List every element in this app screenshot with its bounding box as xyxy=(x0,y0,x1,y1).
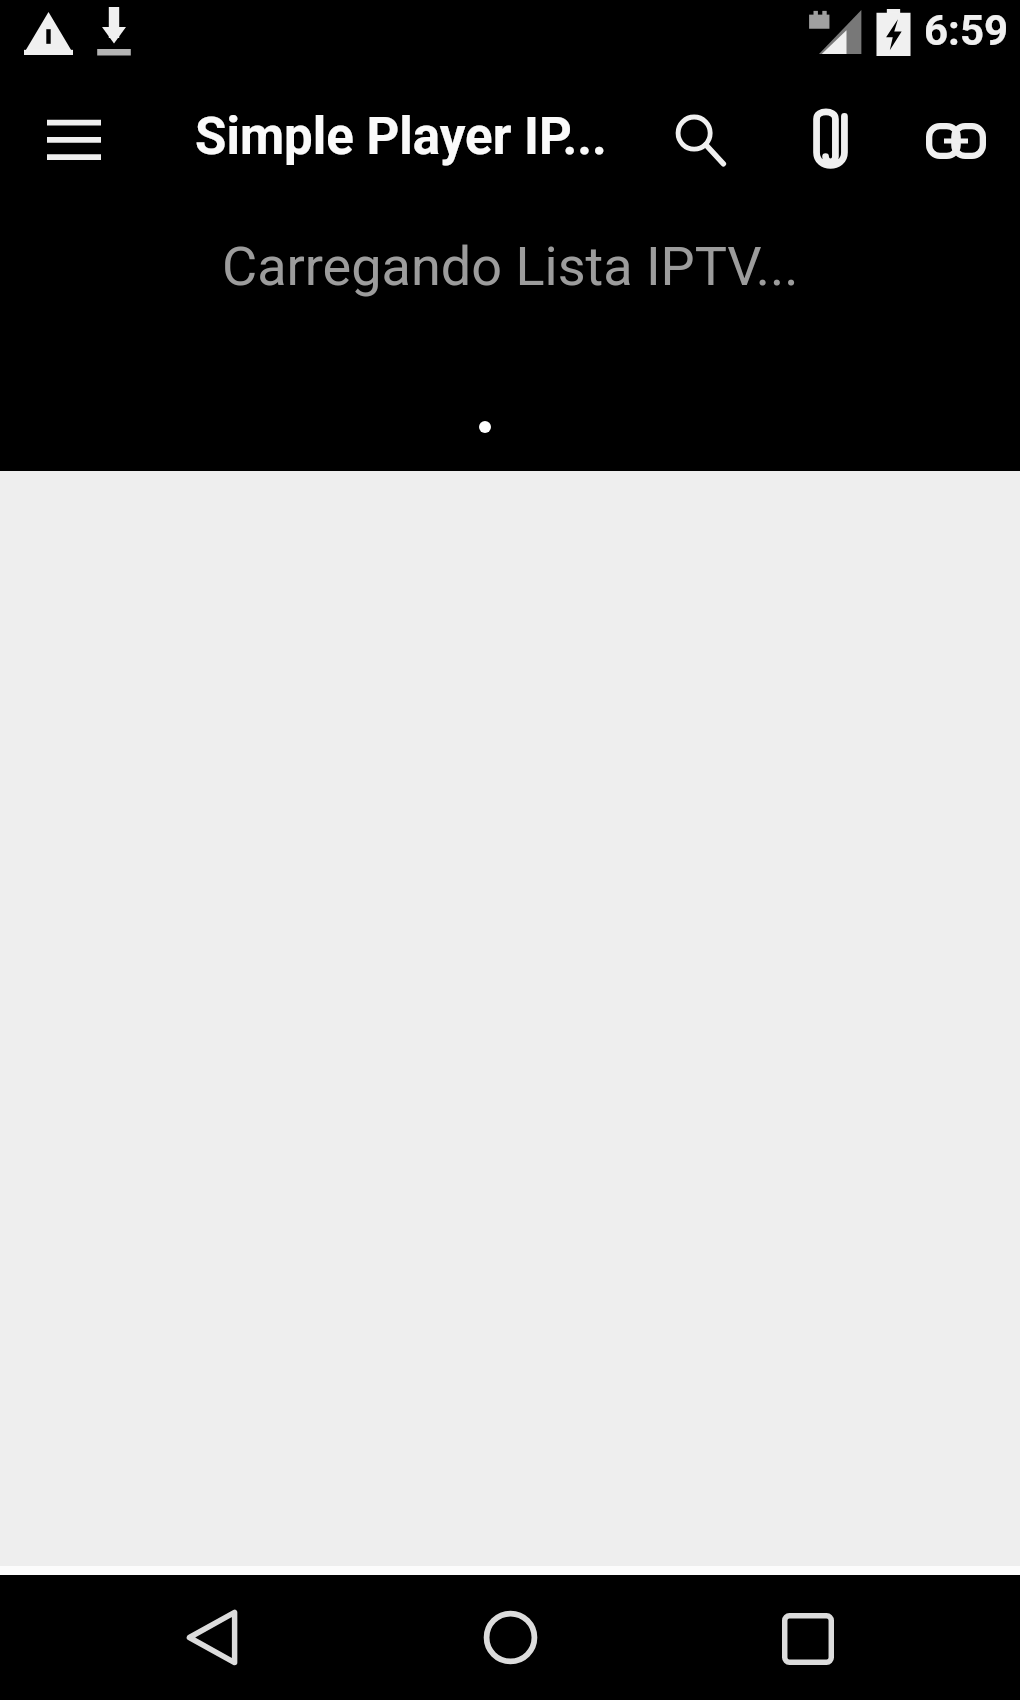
button[interactable]: Add link xyxy=(911,93,1001,189)
button[interactable]: Recent apps xyxy=(748,1584,868,1694)
button[interactable]: Home xyxy=(450,1582,570,1692)
button[interactable]: Back xyxy=(152,1582,272,1692)
staticText: Carregando Lista IPTV... xyxy=(222,235,799,298)
button[interactable]: Open navigation menu xyxy=(26,97,122,177)
button[interactable]: Attach file xyxy=(785,92,875,188)
staticText: 6:59 xyxy=(924,6,1009,55)
staticText: Simple Player IP... xyxy=(195,107,607,167)
button[interactable]: Search xyxy=(655,92,745,188)
